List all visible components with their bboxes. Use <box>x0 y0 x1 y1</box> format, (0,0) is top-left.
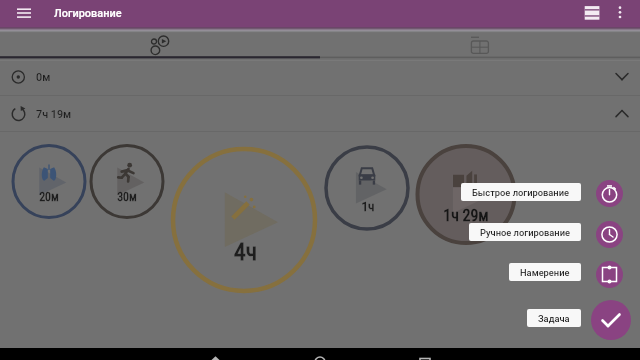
button[interactable]: Add task <box>591 300 631 340</box>
button[interactable]: Быстрое логирование <box>596 180 623 207</box>
button[interactable]: Намерение <box>596 261 623 288</box>
staticText: 20м <box>39 190 59 204</box>
staticText: 1ч <box>361 198 375 214</box>
button[interactable]: Calendar tab <box>320 33 640 57</box>
staticText: Намерение <box>520 267 570 278</box>
staticText: Ручное логирование <box>480 227 570 238</box>
button[interactable]: Ручное логирование <box>469 223 581 241</box>
staticText: Логирование <box>54 7 122 20</box>
button[interactable]: 0м <box>0 61 640 96</box>
button[interactable]: Open navigation drawer <box>14 2 34 25</box>
staticText: 30м <box>117 190 137 204</box>
staticText: 0м <box>36 71 51 84</box>
button[interactable]: Switch list view <box>582 2 602 25</box>
staticText: Задача <box>538 313 570 324</box>
button[interactable]: Быстрое логирование <box>461 183 581 201</box>
button[interactable]: Activity tab <box>0 33 320 57</box>
staticText: Быстрое логирование <box>472 187 570 198</box>
button[interactable]: 7ч 19м <box>0 96 640 132</box>
staticText: 7ч 19м <box>36 108 72 121</box>
button[interactable]: Намерение <box>509 263 581 281</box>
button[interactable]: Ручное логирование <box>596 221 623 248</box>
button[interactable]: More options <box>612 2 628 25</box>
staticText: 1ч 29м <box>443 206 489 225</box>
button[interactable]: Задача <box>527 309 581 327</box>
staticText: 4ч <box>234 238 257 266</box>
